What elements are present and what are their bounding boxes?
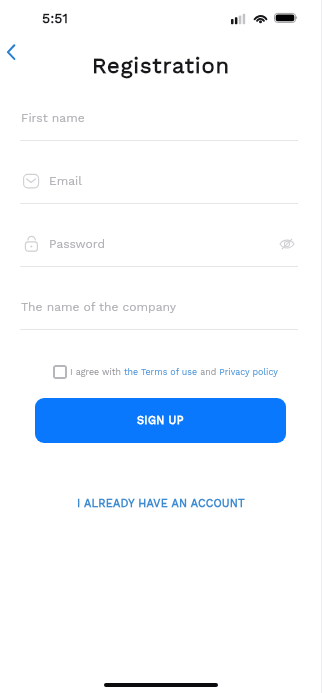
button[interactable]: The name of the company [20,286,298,328]
staticText: Email [49,174,83,188]
button[interactable]: Back [0,38,25,66]
staticText: First name [21,111,85,125]
button[interactable]: Show password [276,233,298,255]
button[interactable]: First name [20,97,298,139]
button[interactable]: Password [20,223,298,265]
button[interactable]: I ALREADY HAVE AN ACCOUNT [67,492,255,515]
staticText: SIGN UP [137,414,184,427]
staticText: The name of the company [21,300,177,314]
staticText: 5:51 [42,10,68,26]
staticText: I ALREADY HAVE AN ACCOUNT [77,497,245,510]
staticText: Registration [92,53,231,79]
button[interactable]: SIGN UP [35,398,286,443]
staticText: I agree with the Terms of use and Privac… [70,367,278,377]
button[interactable]: I agree with the Terms of use and Privac… [53,361,278,383]
button[interactable]: Email [20,160,298,202]
staticText: Password [49,237,106,251]
